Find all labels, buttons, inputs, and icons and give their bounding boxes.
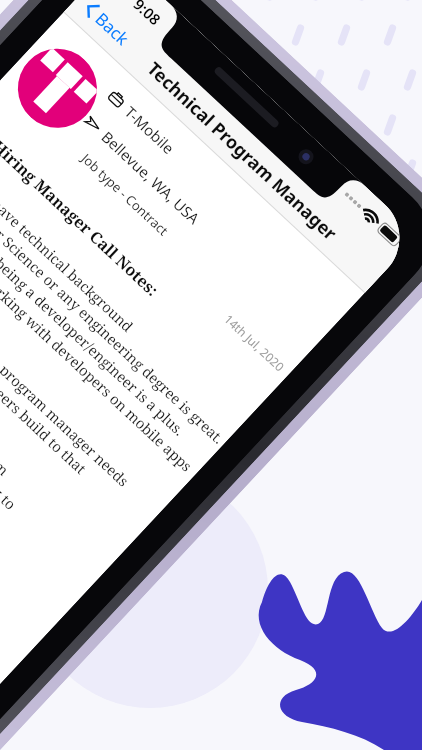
button[interactable]: Back (76, 0, 138, 54)
staticText: Job type - Contract (78, 149, 173, 240)
staticText: Must have technical background Computer … (0, 168, 244, 496)
staticText: Bellevue, WA, USA (97, 127, 205, 229)
staticText: Technical Program Manager (142, 56, 342, 246)
staticText: Agile project management, scrum Knows wh… (0, 307, 34, 576)
staticText: Hiring Manager Call Notes: (0, 135, 163, 301)
staticText: 9:08 (130, 0, 165, 29)
staticText: Back (90, 7, 134, 50)
staticText: mobile UI design - this program manager … (0, 252, 134, 521)
staticText: 14th Jul, 2020 (221, 311, 288, 375)
staticText: T-Mobile (121, 102, 179, 158)
